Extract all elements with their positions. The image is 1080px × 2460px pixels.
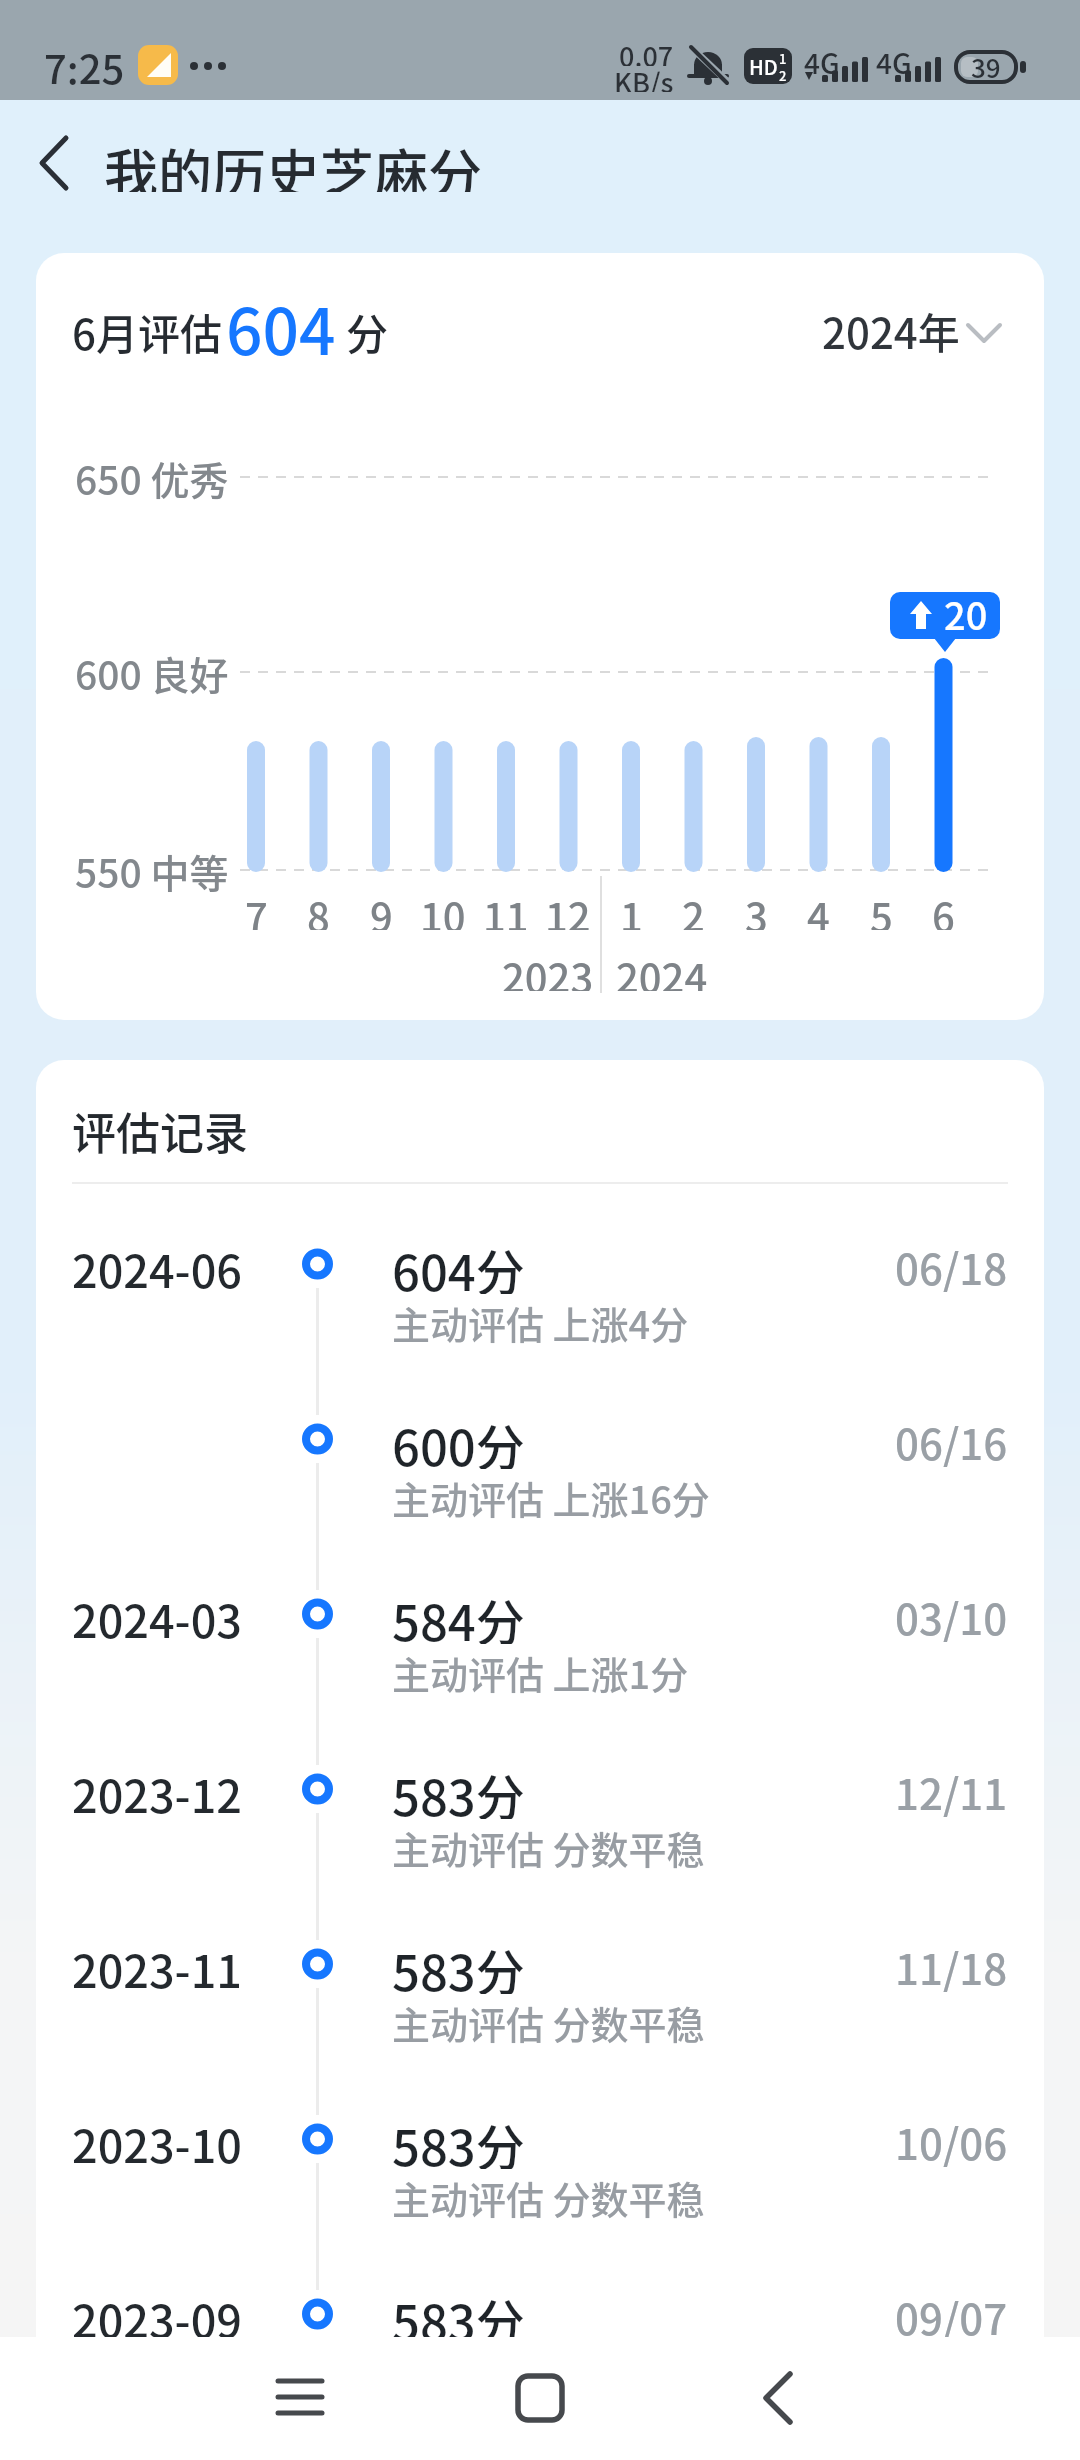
staticText: 主动评估 上涨16分 — [392, 1470, 710, 1522]
staticText: 584分 — [392, 1584, 525, 1644]
staticText: 06/16 — [895, 1411, 1008, 1467]
staticText: 03/10 — [895, 1586, 1008, 1642]
staticText: 2 — [779, 66, 787, 83]
staticText: 2024年 — [822, 300, 960, 360]
button[interactable] — [240, 2350, 360, 2445]
staticText: 6 — [932, 886, 955, 930]
staticText: 2024-06 — [72, 1236, 242, 1292]
staticText: 7 — [245, 886, 268, 930]
staticText: 12/11 — [895, 1761, 1008, 1817]
button[interactable] — [30, 128, 90, 198]
staticText: 2023-10 — [72, 2111, 242, 2167]
staticText: 我的历史芝麻分 — [104, 132, 482, 192]
staticText: 600分 — [392, 1409, 525, 1469]
button[interactable] — [36, 1904, 1044, 2074]
button[interactable] — [36, 2254, 1044, 2424]
staticText: 650 优秀 — [75, 450, 229, 506]
staticText: 604 — [226, 281, 336, 357]
staticText: 4 — [807, 886, 830, 930]
staticText: 2024-03 — [72, 1586, 242, 1642]
staticText: 主动评估 分数平稳 — [392, 1820, 705, 1872]
staticText: 3 — [745, 886, 768, 930]
button[interactable] — [36, 1554, 1044, 1724]
staticText: 6月评估 — [72, 301, 222, 359]
staticText: 583分 — [392, 2109, 525, 2169]
button[interactable] — [36, 1379, 1044, 1549]
staticText: 12 — [545, 886, 591, 930]
staticText: 600 良好 — [75, 645, 229, 701]
staticText: 2023 — [502, 947, 594, 991]
staticText: 11 — [483, 886, 529, 930]
button[interactable] — [720, 2350, 840, 2445]
staticText: 550 中等 — [75, 843, 229, 899]
staticText: 10 — [420, 886, 466, 930]
staticText: 583分 — [392, 1934, 525, 1994]
staticText: 09/07 — [895, 2286, 1008, 2342]
staticText: 2023-12 — [72, 1761, 242, 1817]
button[interactable] — [36, 1204, 1044, 1374]
staticText: 10/06 — [895, 2111, 1008, 2167]
staticText: 583分 — [392, 2284, 525, 2344]
staticText: 7:25 — [44, 38, 125, 92]
button[interactable] — [36, 1729, 1044, 1899]
button[interactable] — [480, 2350, 600, 2445]
staticText: 2023-11 — [72, 1936, 242, 1992]
staticText: 4G — [876, 42, 912, 74]
staticText: 11/18 — [895, 1936, 1008, 1992]
staticText: 2 — [682, 886, 705, 930]
staticText: 2023-09 — [72, 2286, 242, 2342]
staticText: 20 — [944, 586, 988, 630]
staticText: 评估记录 — [72, 1099, 248, 1157]
staticText: KB/s — [614, 62, 674, 92]
staticText: 583分 — [392, 1759, 525, 1819]
staticText: 0.07 — [619, 36, 674, 66]
staticText: 604分 — [392, 1234, 525, 1294]
staticText: 主动评估 上涨4分 — [392, 1295, 689, 1347]
staticText: 5 — [870, 886, 893, 930]
staticText: 39 — [971, 48, 1001, 86]
button[interactable]: 2024年 — [760, 300, 960, 360]
staticText: 主动评估 上涨1分 — [392, 1645, 689, 1697]
staticText: 1 — [620, 886, 643, 930]
staticText: 4G — [804, 42, 840, 74]
staticText: 2024 — [616, 947, 708, 991]
staticText: HD — [749, 52, 778, 81]
staticText: 9 — [370, 886, 393, 930]
staticText: 06/18 — [895, 1236, 1008, 1292]
staticText: 1 — [779, 49, 787, 66]
button[interactable] — [36, 2079, 1044, 2249]
staticText: 主动评估 分数平稳 — [392, 2345, 705, 2397]
staticText: 主动评估 分数平稳 — [392, 1995, 705, 2047]
staticText: 8 — [307, 886, 330, 930]
staticText: 主动评估 分数平稳 — [392, 2170, 705, 2222]
staticText: 分 — [346, 301, 389, 359]
